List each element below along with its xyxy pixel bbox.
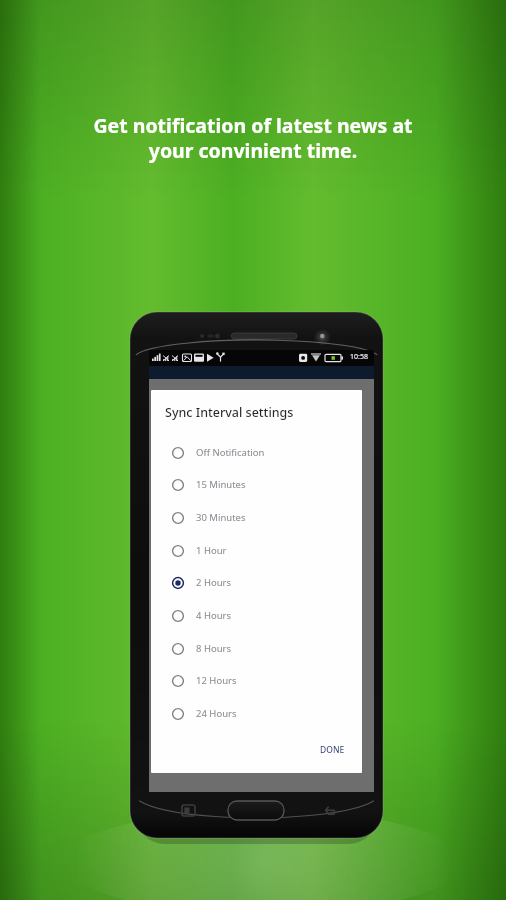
button[interactable]: Recent apps bbox=[175, 799, 201, 821]
staticText: 12 Hours bbox=[196, 674, 237, 687]
button[interactable]: Back bbox=[317, 799, 343, 821]
staticText: Sync Interval settings bbox=[165, 404, 294, 421]
button[interactable]: 15 Minutes bbox=[157, 469, 356, 501]
staticText: DONE bbox=[320, 744, 345, 756]
staticText: 8 Hours bbox=[196, 642, 232, 655]
button[interactable]: 1 Hour bbox=[157, 535, 356, 567]
button[interactable]: Home bbox=[228, 801, 284, 820]
button[interactable]: 8 Hours bbox=[157, 633, 356, 665]
button[interactable]: 24 Hours bbox=[157, 698, 356, 730]
staticText: Get notification of latest news at your … bbox=[93, 112, 413, 164]
staticText: 15 Minutes bbox=[196, 478, 246, 491]
button[interactable]: 12 Hours bbox=[157, 665, 356, 697]
staticText: 1 Hour bbox=[196, 544, 227, 557]
button[interactable]: 2 Hours bbox=[157, 567, 356, 599]
button[interactable]: 4 Hours bbox=[157, 600, 356, 632]
button[interactable]: DONE bbox=[311, 739, 353, 761]
staticText: Off Notification bbox=[196, 446, 265, 459]
button[interactable]: Off Notification bbox=[157, 437, 356, 469]
staticText: 24 Hours bbox=[196, 707, 237, 720]
staticText: 2 Hours bbox=[196, 576, 232, 589]
staticText: 10:58 bbox=[350, 352, 368, 362]
staticText: 30 Minutes bbox=[196, 511, 246, 524]
staticText: 4 Hours bbox=[196, 609, 232, 622]
button[interactable]: 30 Minutes bbox=[157, 502, 356, 534]
